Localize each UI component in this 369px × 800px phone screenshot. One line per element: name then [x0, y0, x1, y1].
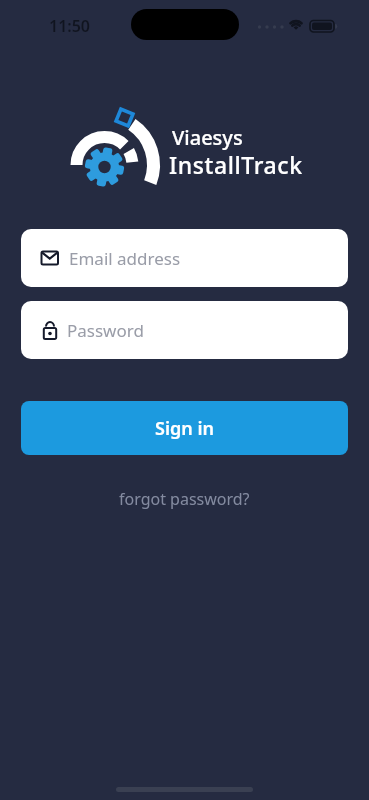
staticText: Password: [67, 319, 144, 342]
staticText: Email address: [69, 247, 181, 270]
staticText: 11:50: [49, 15, 91, 37]
button[interactable]: Email address: [21, 229, 348, 287]
staticText: InstallTrack: [169, 149, 303, 180]
button[interactable]: Password: [21, 301, 348, 359]
button[interactable]: forgot password?: [119, 488, 250, 510]
staticText: Viaesys: [172, 124, 243, 151]
button[interactable]: Sign in: [21, 401, 348, 455]
staticText: Sign in: [155, 416, 215, 441]
